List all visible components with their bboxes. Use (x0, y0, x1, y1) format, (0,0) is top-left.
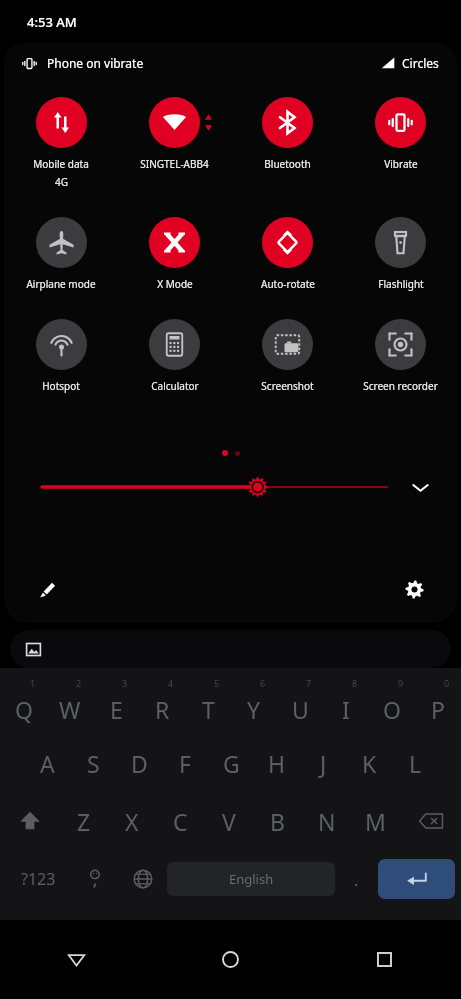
staticText: B (270, 806, 285, 837)
button[interactable]: 8 (323, 672, 369, 734)
button[interactable]: 0 (415, 672, 461, 734)
staticText: Q (15, 694, 33, 725)
staticText: 4 (168, 677, 174, 689)
button[interactable]: Back (0, 920, 153, 999)
button[interactable]: H (254, 734, 300, 792)
staticText: H (268, 748, 286, 779)
staticText: W (59, 694, 81, 725)
staticText: Z (77, 806, 91, 837)
button[interactable]: V (204, 792, 253, 850)
staticText: P (431, 694, 445, 725)
staticText: X (125, 806, 139, 837)
button[interactable]: J (300, 734, 346, 792)
button[interactable]: 3 (93, 672, 139, 734)
staticText: Circles (402, 55, 439, 71)
button[interactable]: 2 (47, 672, 93, 734)
staticText: R (155, 694, 170, 725)
other: Insert image (24, 640, 42, 658)
button[interactable]: Change language (119, 850, 167, 908)
button[interactable]: A (24, 734, 70, 792)
button[interactable]: Auto-rotate (231, 217, 344, 291)
button[interactable]: English (167, 862, 335, 896)
staticText: 2 (76, 677, 82, 689)
staticText: 5 (214, 677, 220, 689)
button[interactable]: Enter (378, 859, 455, 899)
button[interactable]: X Mode (118, 217, 231, 291)
button[interactable]: X (108, 792, 156, 850)
button[interactable]: D (116, 734, 162, 792)
staticText: Hotspot (42, 379, 80, 393)
staticText: Airplane mode (26, 277, 96, 291)
button[interactable]: L (392, 734, 438, 792)
button[interactable]: Backspace (400, 792, 461, 850)
button[interactable]: Emoji (71, 850, 119, 908)
staticText: 6 (260, 677, 266, 689)
staticText: English (229, 870, 274, 888)
button[interactable]: Edit tiles (30, 572, 64, 606)
staticText: 7 (306, 677, 312, 689)
staticText: X Mode (157, 277, 193, 291)
button[interactable]: SINGTEL-ABB4 (118, 97, 231, 171)
staticText: 3 (122, 677, 128, 689)
button[interactable]: S (70, 734, 116, 792)
staticText: V (222, 806, 236, 837)
button[interactable]: Screen recorder (344, 319, 457, 393)
button[interactable]: Recents (307, 920, 461, 999)
button[interactable]: Bluetooth (231, 97, 344, 171)
button[interactable]: 4 (139, 672, 185, 734)
button[interactable]: 5 (185, 672, 231, 734)
staticText: Screenshot (261, 379, 314, 393)
button[interactable]: K (346, 734, 392, 792)
button[interactable]: C (156, 792, 204, 850)
button[interactable]: Screenshot (231, 319, 344, 393)
staticText: Auto-rotate (261, 277, 315, 291)
button[interactable]: G (208, 734, 254, 792)
button[interactable]: F (162, 734, 208, 792)
button[interactable]: Calculator (118, 319, 231, 393)
staticText: C (173, 806, 188, 837)
staticText: T (202, 694, 215, 725)
button[interactable]: Insert image (10, 630, 451, 668)
staticText: M (365, 806, 386, 837)
staticText: J (320, 748, 327, 779)
staticText: L (409, 748, 422, 779)
button[interactable]: ?123 (6, 850, 71, 908)
button[interactable]: Flashlight (344, 217, 457, 291)
staticText: N (318, 806, 336, 837)
staticText: . (354, 868, 359, 891)
staticText: 1 (30, 677, 36, 689)
staticText: A (40, 748, 55, 779)
button[interactable]: Mobile data (4, 97, 118, 189)
staticText: Phone on vibrate (47, 55, 144, 71)
button[interactable]: Airplane mode (4, 217, 118, 291)
button[interactable]: 7 (277, 672, 323, 734)
staticText: 9 (398, 677, 404, 689)
staticText: 4:53 AM (27, 13, 77, 31)
staticText: Mobile data (33, 157, 89, 171)
staticText: F (179, 748, 191, 779)
button[interactable]: Z (60, 792, 108, 850)
button[interactable]: Shift (0, 792, 60, 850)
staticText: Screen recorder (363, 379, 438, 393)
staticText: S (87, 748, 100, 779)
button[interactable]: Home (153, 920, 307, 999)
button[interactable]: Vibrate (344, 97, 457, 171)
button[interactable]: 9 (369, 672, 415, 734)
button[interactable]: Settings (397, 572, 431, 606)
button[interactable]: M (351, 792, 400, 850)
staticText: ?123 (21, 868, 56, 890)
staticText: Calculator (151, 379, 199, 393)
staticText: Vibrate (384, 157, 418, 171)
button[interactable] (42, 471, 387, 503)
button[interactable]: Expand (405, 472, 435, 502)
button[interactable]: Hotspot (4, 319, 118, 393)
button[interactable]: 6 (231, 672, 277, 734)
staticText: I (342, 694, 350, 725)
staticText: Bluetooth (264, 157, 311, 171)
button[interactable]: 1 (0, 672, 47, 734)
staticText: U (292, 694, 309, 725)
staticText: D (131, 748, 148, 779)
button[interactable]: B (253, 792, 302, 850)
button[interactable]: N (302, 792, 351, 850)
